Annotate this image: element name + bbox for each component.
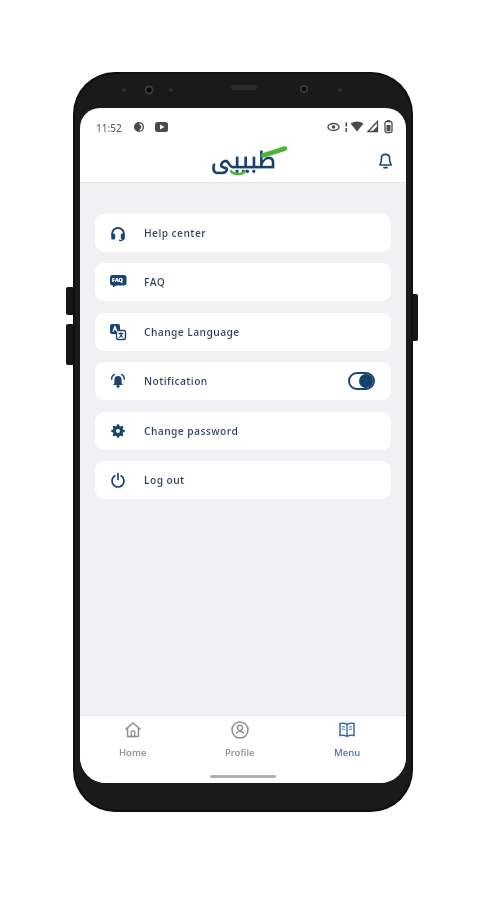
button[interactable]	[377, 152, 394, 171]
button[interactable]: Profile	[208, 720, 272, 772]
staticText: Help center	[144, 226, 207, 240]
staticText: Profile	[225, 746, 255, 759]
button[interactable]: Help center	[95, 214, 391, 252]
button[interactable]: Change Language	[95, 313, 391, 351]
staticText: FAQ	[144, 275, 166, 289]
button[interactable]: FAQ	[95, 263, 391, 301]
button[interactable]: Menu	[315, 720, 379, 772]
staticText: 11:52	[96, 121, 122, 135]
staticText: Home	[119, 746, 147, 759]
staticText: Change password	[144, 424, 239, 438]
staticText: Log out	[144, 473, 185, 487]
button[interactable]: Home	[101, 720, 165, 772]
button[interactable]: Notification	[95, 362, 391, 400]
button[interactable]: Change password	[95, 412, 391, 450]
staticText: طبيبي	[211, 139, 276, 175]
staticText: FAQ	[112, 276, 123, 283]
button[interactable]	[348, 372, 375, 390]
staticText: Menu	[334, 746, 361, 759]
staticText: Change Language	[144, 325, 240, 339]
button[interactable]: Log out	[95, 461, 391, 499]
staticText: Notification	[144, 374, 208, 388]
